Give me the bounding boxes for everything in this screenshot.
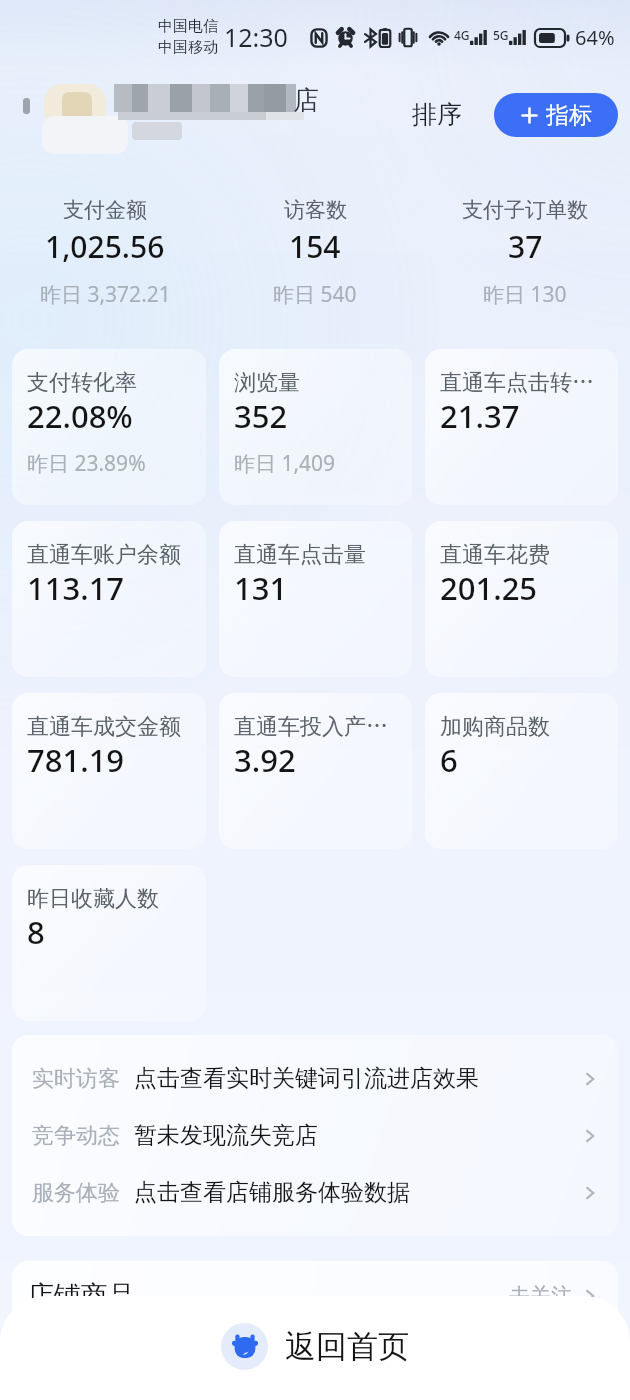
staticText: 3.92 — [234, 739, 296, 781]
staticText: 直通车成交金额 — [27, 713, 189, 741]
button[interactable]: 支付子订单数 — [420, 197, 630, 309]
button[interactable]: 直通车点击转化率 — [425, 349, 618, 505]
staticText: 返回首页 — [285, 1327, 409, 1366]
staticText: 37 — [508, 226, 543, 267]
staticText: 113.17 — [27, 567, 125, 609]
button[interactable]: 昨日收藏人数 — [12, 865, 206, 1021]
staticText: 昨日 23.89% — [27, 449, 146, 478]
staticText: 指标 — [546, 101, 592, 130]
staticText: 8 — [27, 911, 45, 953]
staticText: 201.25 — [440, 567, 538, 609]
button[interactable]: 指标 — [494, 93, 618, 137]
staticText: 直通车点击量 — [234, 541, 395, 569]
staticText: 店铺商品 — [27, 1279, 135, 1313]
staticText: 访客数 — [284, 197, 347, 223]
staticText: 服务体验 — [32, 1179, 120, 1207]
staticText: 昨日 130 — [483, 280, 567, 309]
button[interactable]: 店铺商品 — [12, 1261, 618, 1341]
staticText: 支付子订单数 — [462, 197, 588, 223]
button[interactable]: 直通车成交金额 — [12, 693, 206, 849]
staticText: 支付转化率 — [27, 369, 189, 397]
button[interactable]: 直通车账户余额 — [12, 521, 206, 677]
button[interactable]: 加购商品数 — [425, 693, 618, 849]
button[interactable]: 竞争动态 — [12, 1107, 618, 1164]
button[interactable]: 浏览量 — [219, 349, 412, 505]
staticText: 昨日 540 — [273, 280, 357, 309]
staticText: 浏览量 — [234, 369, 395, 397]
staticText: 1,025.56 — [45, 226, 165, 267]
staticText: 点击查看实时关键词引流进店效果 — [134, 1064, 479, 1093]
staticText: 352 — [234, 395, 288, 437]
button[interactable]: 实时访客 — [12, 1050, 618, 1107]
button[interactable]: 服务体验 — [12, 1164, 618, 1221]
staticText: 中国电信 — [158, 17, 218, 36]
staticText: 6 — [440, 739, 458, 781]
button[interactable]: 直通车花费 — [425, 521, 618, 677]
staticText: 店 — [293, 84, 319, 117]
staticText: 支付金额 — [63, 197, 147, 223]
button[interactable]: 直通车点击量 — [219, 521, 412, 677]
staticText: 12:30 — [224, 20, 288, 54]
staticText: 21.37 — [440, 395, 520, 437]
staticText: 直通车账户余额 — [27, 541, 189, 569]
staticText: 154 — [289, 226, 341, 267]
staticText: 直通车投入产出比 — [234, 713, 395, 741]
staticText: 5G — [493, 27, 509, 43]
staticText: 直通车花费 — [440, 541, 601, 569]
staticText: 点击查看店铺服务体验数据 — [134, 1178, 410, 1207]
staticText: 实时访客 — [32, 1065, 120, 1093]
staticText: 昨日 3,372.21 — [40, 280, 171, 309]
button[interactable]: 返回首页 — [221, 1323, 409, 1370]
staticText: 昨日 1,409 — [234, 449, 336, 478]
staticText: 直通车点击转化率 — [440, 369, 601, 397]
button[interactable]: Shop name — [0, 72, 630, 144]
staticText: 加购商品数 — [440, 713, 601, 741]
button[interactable]: 直通车投入产出比 — [219, 693, 412, 849]
staticText: 昨日收藏人数 — [27, 885, 189, 913]
staticText: 64% — [575, 24, 615, 51]
staticText: 去关注 — [509, 1283, 572, 1309]
staticText: 22.08% — [27, 395, 133, 437]
button[interactable]: 支付金额 — [0, 197, 210, 309]
staticText: 781.19 — [27, 739, 125, 781]
staticText: 131 — [234, 567, 288, 609]
button[interactable]: 支付转化率 — [12, 349, 206, 505]
staticText: 4G — [454, 27, 470, 43]
staticText: 中国移动 — [158, 38, 218, 57]
button[interactable]: 访客数 — [210, 197, 420, 309]
staticText: 竞争动态 — [32, 1122, 120, 1150]
staticText: 暂未发现流失竞店 — [134, 1121, 318, 1150]
button[interactable]: 排序 — [406, 91, 468, 138]
